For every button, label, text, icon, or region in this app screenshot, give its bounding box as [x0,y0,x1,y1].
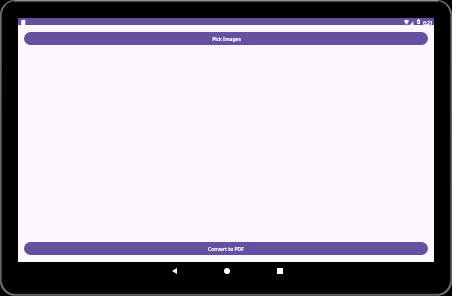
button[interactable]: Recent apps [272,263,287,278]
button[interactable]: Home [219,263,234,278]
staticText: 6:21 [423,19,433,26]
staticText: Convert to PDF [208,246,244,253]
button[interactable]: Convert to PDF [24,242,428,255]
button[interactable]: Pick Images [24,32,428,45]
button[interactable]: Back [167,263,182,278]
staticText: Pick Images [212,36,241,43]
